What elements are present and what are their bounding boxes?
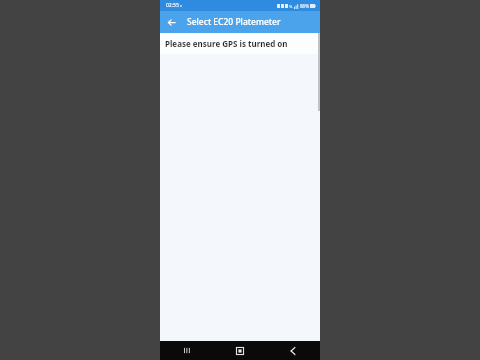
button[interactable]: Recents — [172, 341, 202, 360]
staticText: Please ensure GPS is turned on — [165, 38, 288, 49]
staticText: Select EC20 Platemeter — [187, 16, 281, 28]
button[interactable]: Please ensure GPS is turned on — [160, 33, 320, 54]
button[interactable]: Back — [163, 14, 179, 30]
button[interactable]: Home — [225, 341, 255, 360]
staticText: 02:55 — [166, 2, 179, 9]
staticText: 86% — [300, 3, 309, 9]
button[interactable]: Back — [278, 341, 308, 360]
staticText: % — [289, 4, 293, 9]
